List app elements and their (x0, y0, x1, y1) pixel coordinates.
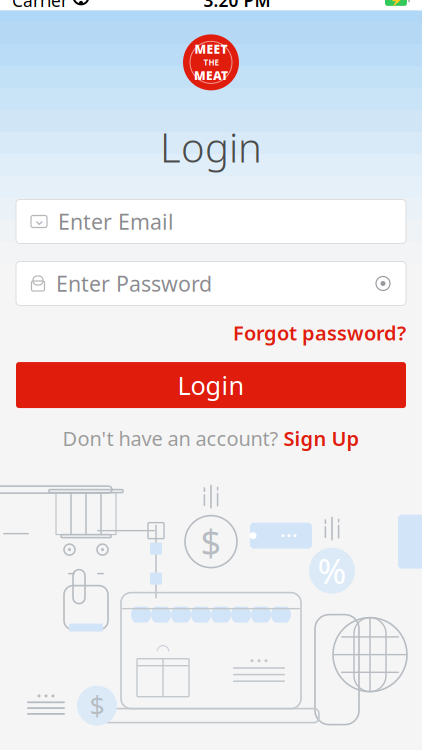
staticText: $ (89, 688, 104, 723)
staticText: Carrier (12, 0, 68, 12)
button[interactable]: Show password (374, 276, 392, 290)
button[interactable]: Forgot password? (233, 319, 406, 346)
staticText: Enter Password (56, 269, 212, 298)
staticText: MEAT (194, 68, 228, 84)
staticText: Sign Up (283, 425, 359, 452)
staticText: Enter Email (58, 207, 174, 236)
staticText: MEET (194, 41, 227, 57)
staticText: Login (160, 120, 262, 173)
staticText: % (317, 548, 346, 594)
staticText: Forgot password? (233, 319, 406, 346)
staticText: Don't have an account? (62, 425, 278, 452)
staticText: $ (200, 518, 221, 565)
staticText: ⌄ (32, 210, 45, 229)
staticText: ⚡ (389, 0, 402, 6)
staticText: Login (177, 368, 244, 402)
staticText: ◠ (156, 640, 170, 659)
button[interactable]: Sign Up (283, 425, 359, 452)
staticText: 3:20 PM (203, 0, 270, 12)
button[interactable]: Login (16, 362, 406, 408)
staticText: THE (203, 57, 218, 68)
